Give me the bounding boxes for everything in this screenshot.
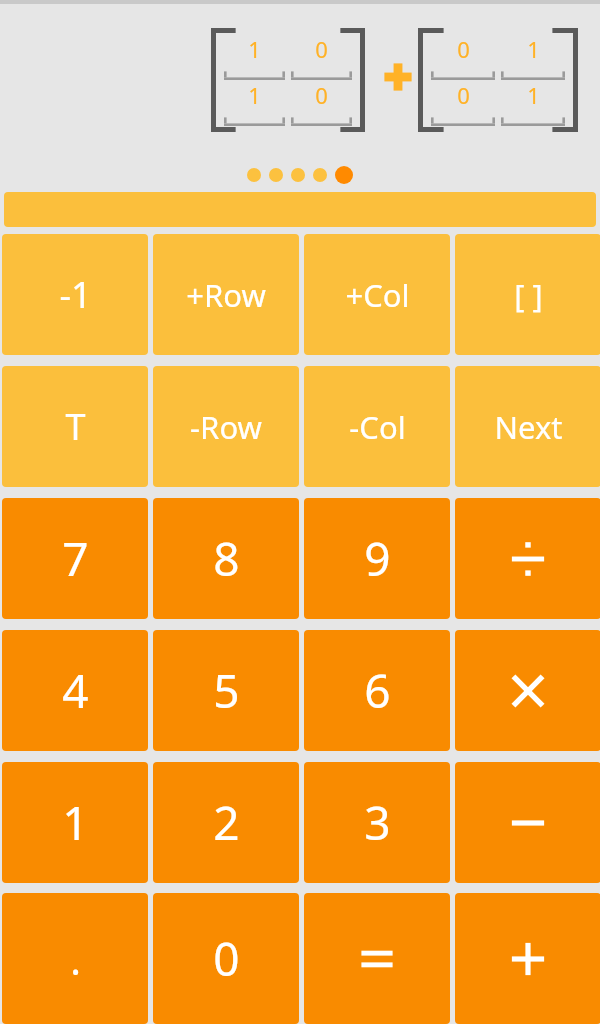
- button[interactable]: +Col: [304, 234, 450, 355]
- button[interactable]: 4: [2, 630, 148, 751]
- staticText: 0: [213, 927, 240, 990]
- button[interactable]: 1: [2, 762, 148, 883]
- staticText: 1: [248, 34, 261, 64]
- button[interactable]: [335, 166, 353, 184]
- staticText: +Row: [186, 274, 266, 316]
- button[interactable]: [455, 498, 600, 619]
- button[interactable]: 8: [153, 498, 299, 619]
- button[interactable]: 0: [153, 893, 299, 1024]
- button[interactable]: [455, 893, 600, 1024]
- button[interactable]: [ ]: [455, 234, 600, 355]
- staticText: 1: [527, 34, 540, 64]
- button[interactable]: .: [2, 893, 148, 1024]
- staticText: +Col: [345, 274, 410, 316]
- staticText: 1: [248, 80, 261, 110]
- staticText: Next: [494, 406, 563, 448]
- button[interactable]: +Row: [153, 234, 299, 355]
- staticText: 1: [62, 791, 89, 854]
- button[interactable]: [291, 168, 305, 182]
- button[interactable]: [269, 168, 283, 182]
- staticText: -Row: [190, 406, 262, 448]
- staticText: 7: [62, 527, 89, 590]
- staticText: [ ]: [514, 274, 543, 316]
- staticText: 0: [315, 34, 328, 64]
- staticText: 8: [213, 527, 240, 590]
- staticText: .: [70, 932, 81, 986]
- button[interactable]: [247, 168, 261, 182]
- button[interactable]: -Row: [153, 366, 299, 487]
- button[interactable]: [304, 893, 450, 1024]
- button[interactable]: -1: [2, 234, 148, 355]
- staticText: 1: [527, 80, 540, 110]
- button[interactable]: 5: [153, 630, 299, 751]
- button[interactable]: [313, 168, 327, 182]
- staticText: 4: [62, 659, 89, 722]
- button[interactable]: Next: [455, 366, 600, 487]
- button[interactable]: [455, 630, 600, 751]
- button[interactable]: 2: [153, 762, 299, 883]
- button[interactable]: 3: [304, 762, 450, 883]
- button[interactable]: [455, 762, 600, 883]
- button[interactable]: Matrix input: [418, 28, 578, 132]
- staticText: 3: [364, 791, 391, 854]
- button[interactable]: 7: [2, 498, 148, 619]
- staticText: 2: [213, 791, 240, 854]
- staticText: -Col: [349, 406, 406, 448]
- staticText: 0: [457, 34, 470, 64]
- button[interactable]: Matrix input: [211, 28, 365, 132]
- button[interactable]: -Col: [304, 366, 450, 487]
- staticText: 9: [364, 527, 391, 590]
- staticText: -1: [59, 270, 92, 319]
- staticText: 0: [315, 80, 328, 110]
- staticText: 6: [364, 659, 391, 722]
- staticText: 5: [213, 659, 240, 722]
- button[interactable]: [4, 192, 596, 227]
- button[interactable]: 6: [304, 630, 450, 751]
- button[interactable]: 9: [304, 498, 450, 619]
- staticText: T: [65, 402, 86, 451]
- staticText: 0: [457, 80, 470, 110]
- button[interactable]: T: [2, 366, 148, 487]
